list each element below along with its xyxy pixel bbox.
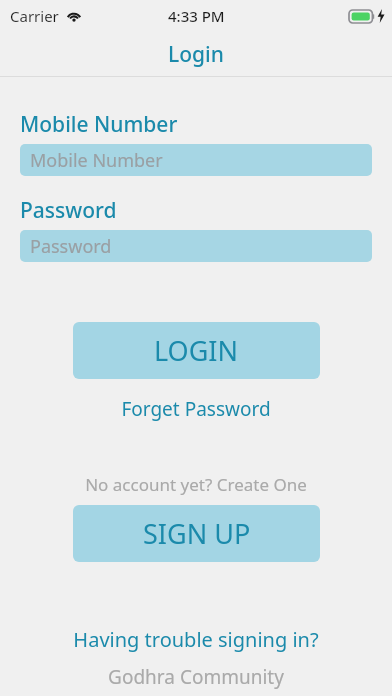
button[interactable]: Godhra Community (102, 662, 290, 692)
button[interactable]: Having trouble signing in? (67, 624, 325, 655)
staticText: Login (168, 40, 224, 69)
staticText: 4:33 PM (168, 6, 225, 26)
staticText: Mobile Number (30, 148, 163, 173)
button[interactable]: SIGN UP (73, 505, 320, 562)
button[interactable]: No account yet? Create One (79, 471, 313, 498)
staticText: Mobile Number (20, 110, 178, 139)
staticText: LOGIN (154, 332, 239, 369)
button[interactable]: Mobile Number (20, 144, 372, 176)
staticText: Password (30, 234, 112, 259)
button[interactable]: Forget Password (115, 394, 277, 424)
button[interactable]: LOGIN (73, 322, 320, 379)
button[interactable]: Password (20, 230, 372, 262)
staticText: SIGN UP (143, 515, 251, 552)
staticText: Password (20, 196, 117, 225)
staticText: Carrier (10, 6, 59, 26)
